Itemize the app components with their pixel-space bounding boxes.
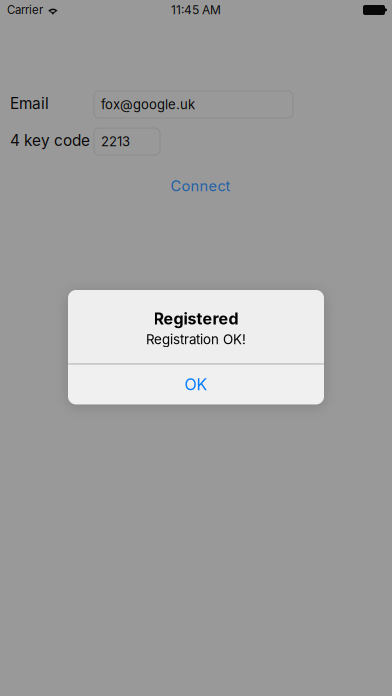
staticText: 4 key code	[10, 131, 90, 150]
staticText: 11:45 AM	[171, 3, 221, 17]
staticText: Email	[10, 94, 49, 113]
staticText: Registered	[153, 309, 238, 328]
button[interactable]: 4 key code	[93, 127, 159, 154]
staticText: fox@google.uk	[101, 97, 195, 112]
staticText: Carrier	[7, 3, 43, 17]
staticText: 2213	[101, 134, 130, 149]
button[interactable]: Connect	[156, 175, 244, 197]
staticText: Registration OK!	[146, 331, 246, 347]
staticText: Connect	[170, 177, 230, 195]
button[interactable]: OK	[68, 364, 324, 404]
button[interactable]: Email	[93, 90, 292, 117]
staticText: OK	[184, 375, 207, 394]
